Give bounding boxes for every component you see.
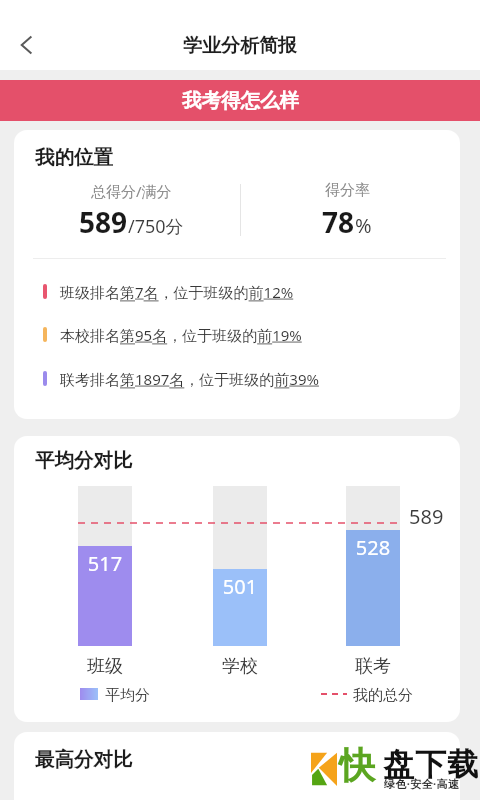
staticText: 总得分/满分: [91, 181, 172, 201]
button[interactable]: 我考得怎么样: [0, 80, 480, 121]
staticText: 得分率: [325, 181, 370, 200]
staticText: 平均分对比: [35, 448, 133, 473]
staticText: 501: [195, 573, 285, 600]
staticText: 盘下载: [383, 745, 480, 784]
staticText: 517: [60, 550, 150, 577]
staticText: 最高分对比: [35, 747, 133, 772]
staticText: 学校: [195, 655, 285, 678]
staticText: 我的总分: [353, 686, 413, 705]
staticText: 平均分: [105, 686, 150, 705]
staticText: 联考排名第1897名，位于班级的前39%: [60, 369, 319, 389]
staticText: 78: [322, 203, 355, 241]
staticText: 我的位置: [35, 145, 113, 170]
staticText: 绿色·安全·高速: [384, 776, 460, 791]
staticText: 589: [409, 503, 444, 530]
staticText: 本校排名第95名，位于班级的前19%: [60, 325, 302, 345]
staticText: 589: [79, 203, 128, 241]
staticText: 联考: [328, 655, 418, 678]
staticText: 我考得怎么样: [182, 88, 299, 113]
staticText: 班级: [60, 655, 150, 678]
button[interactable]: 班级排名第7名，位于班级的前12%: [43, 281, 294, 302]
button[interactable]: Back: [5, 23, 49, 67]
button[interactable]: 联考排名第1897名，位于班级的前39%: [43, 368, 319, 389]
staticText: 班级排名第7名，位于班级的前12%: [60, 282, 294, 302]
button[interactable]: 本校排名第95名，位于班级的前19%: [43, 324, 302, 345]
staticText: 学业分析简报: [183, 34, 297, 58]
staticText: 528: [328, 534, 418, 561]
staticText: %: [355, 212, 372, 239]
staticText: /750分: [128, 214, 184, 239]
staticText: 快: [339, 743, 375, 788]
